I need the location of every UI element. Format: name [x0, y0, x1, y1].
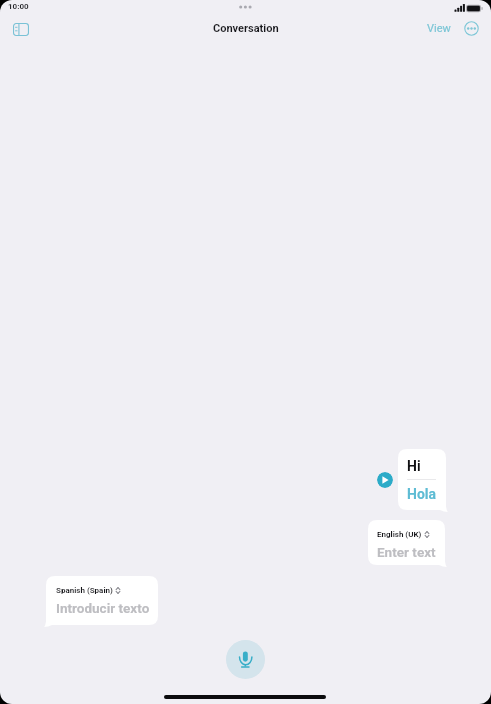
button[interactable]: English (UK) — [368, 520, 445, 565]
staticText: Enter text — [377, 544, 436, 560]
staticText: 10:00 — [8, 2, 29, 11]
button[interactable]: Hi — [398, 449, 446, 510]
staticText: Hola — [407, 486, 436, 502]
button[interactable]: Sidebar — [4, 15, 38, 43]
staticText: Conversation — [213, 22, 279, 35]
button[interactable]: Spanish (Spain) — [46, 576, 158, 625]
button[interactable]: View — [421, 17, 457, 40]
button[interactable]: Play translation — [377, 472, 393, 488]
button[interactable]: Microphone — [226, 640, 265, 679]
staticText: English (UK) — [377, 530, 422, 539]
staticText: Hi — [407, 458, 421, 474]
staticText: View — [427, 22, 451, 35]
button[interactable]: More options — [457, 14, 486, 43]
staticText: Spanish (Spain) — [56, 586, 113, 595]
staticText: Introducir texto — [56, 600, 150, 616]
